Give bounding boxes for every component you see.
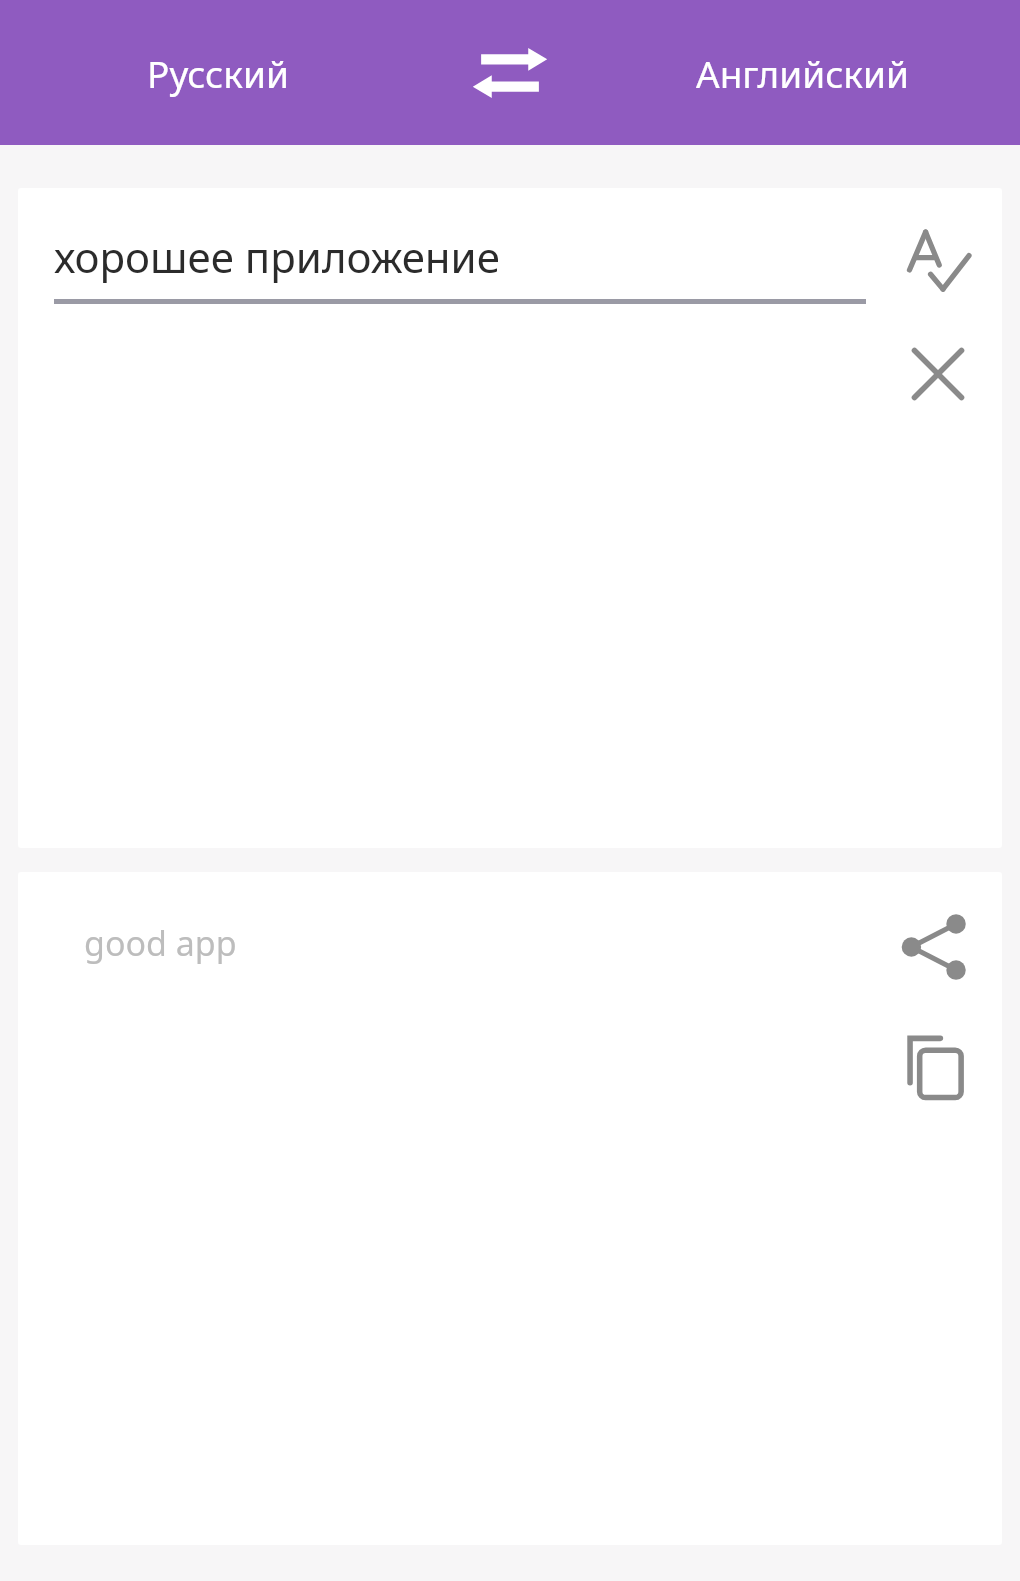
staticText: хорошее приложение: [54, 228, 500, 285]
button[interactable]: Swap languages: [435, 0, 585, 145]
button[interactable]: Copy: [878, 1010, 988, 1120]
staticText: Английский: [696, 48, 909, 98]
button[interactable]: Английский: [585, 0, 1020, 145]
staticText: Русский: [147, 48, 289, 98]
button[interactable]: Share: [878, 892, 988, 1002]
button[interactable]: Русский: [0, 0, 435, 145]
button[interactable]: Clear: [888, 324, 988, 424]
button[interactable]: хорошее приложение: [54, 228, 866, 304]
staticText: good app: [84, 920, 237, 966]
button[interactable]: Spell check: [888, 210, 988, 310]
